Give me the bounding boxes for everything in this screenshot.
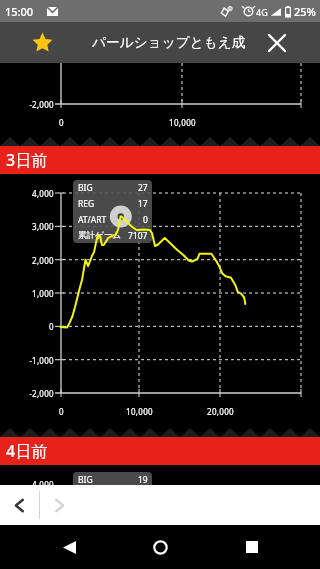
staticText: AT/ART xyxy=(78,214,107,226)
staticText: 0 xyxy=(59,406,64,417)
staticText: 0 xyxy=(49,321,54,332)
staticText: 20,000 xyxy=(207,406,234,417)
staticText: パールショップともえ成 xyxy=(92,34,246,51)
staticText: 27 xyxy=(138,182,148,194)
staticText: 19 xyxy=(138,474,148,486)
button[interactable]: 4日前 xyxy=(0,437,320,465)
button[interactable]: Home xyxy=(137,525,183,569)
staticText: 4,000 xyxy=(32,479,54,490)
staticText: 17 xyxy=(138,198,148,210)
staticText: 0 xyxy=(143,214,148,226)
staticText: 4G xyxy=(256,6,268,18)
button[interactable]: Next xyxy=(40,485,79,525)
staticText: -1,000 xyxy=(29,355,54,366)
button[interactable]: Recents xyxy=(229,525,275,569)
button[interactable]: Previous xyxy=(0,485,39,525)
staticText: 4日前 xyxy=(6,440,48,462)
staticText: 0 xyxy=(59,117,64,128)
staticText: 3日前 xyxy=(6,149,48,171)
staticText: 2,000 xyxy=(32,255,54,266)
button[interactable]: 3日前 xyxy=(0,146,320,174)
button[interactable]: Favorite xyxy=(27,27,58,58)
staticText: 25% xyxy=(294,4,316,19)
staticText: 累計ゲーム xyxy=(78,522,121,533)
button[interactable]: Close xyxy=(261,27,293,59)
staticText: BIG xyxy=(78,474,93,486)
staticText: 15:00 xyxy=(5,4,34,19)
staticText: BIG xyxy=(78,182,93,194)
staticText: -2,000 xyxy=(29,388,54,399)
staticText: 3,000 xyxy=(32,221,54,232)
staticText: REG xyxy=(78,198,95,210)
staticText: 10,000 xyxy=(126,406,153,417)
staticText: 10,000 xyxy=(169,117,196,128)
staticText: -2,000 xyxy=(29,99,54,110)
staticText: 4,000 xyxy=(32,188,54,199)
staticText: 1,000 xyxy=(32,288,54,299)
staticText: 7107 xyxy=(128,230,148,242)
button[interactable]: Back xyxy=(46,525,92,569)
staticText: 累計ゲーム xyxy=(78,230,121,241)
